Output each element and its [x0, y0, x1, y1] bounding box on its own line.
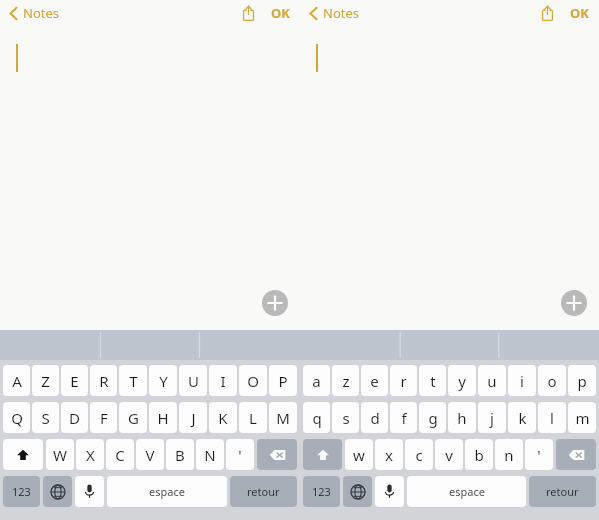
button[interactable]: Z [32, 365, 59, 396]
button[interactable]: W [46, 439, 74, 470]
staticText: Y [159, 371, 168, 391]
staticText: espace [449, 484, 485, 499]
button[interactable]: z [332, 365, 359, 396]
button[interactable]: S [32, 402, 59, 433]
button[interactable]: G [119, 402, 147, 433]
staticText: espace [149, 484, 185, 499]
staticText: v [445, 445, 453, 465]
staticText: y [458, 371, 466, 391]
button[interactable]: V [136, 439, 164, 470]
staticText: C [115, 445, 125, 465]
button[interactable]: Dictate [375, 476, 404, 507]
button[interactable]: Y [149, 365, 177, 396]
button[interactable]: M [269, 402, 297, 433]
button[interactable]: h [448, 402, 476, 433]
button[interactable]: C [106, 439, 134, 470]
staticText: retour [546, 484, 579, 499]
staticText: B [175, 445, 185, 465]
button[interactable]: Dictate [75, 476, 104, 507]
button[interactable]: Add [561, 290, 587, 316]
button[interactable]: Backspace [257, 439, 297, 470]
button[interactable]: F [90, 402, 117, 433]
staticText: H [157, 408, 169, 428]
button[interactable]: espace [107, 476, 227, 507]
button[interactable]: U [179, 365, 207, 396]
button[interactable]: N [196, 439, 224, 470]
button[interactable]: t [419, 365, 446, 396]
staticText: E [70, 371, 79, 391]
button[interactable]: espace [407, 476, 526, 507]
button[interactable]: j [478, 402, 506, 433]
staticText: G [128, 408, 139, 428]
button[interactable]: O [239, 365, 267, 396]
button[interactable]: retour [230, 476, 297, 507]
button[interactable]: Share [536, 2, 558, 24]
button[interactable]: Q [3, 402, 30, 433]
staticText: n [504, 445, 514, 465]
button[interactable]: d [361, 402, 388, 433]
button[interactable]: m [568, 402, 596, 433]
button[interactable]: x [375, 439, 403, 470]
button[interactable]: r [390, 365, 417, 396]
button[interactable]: Change keyboard [343, 476, 372, 507]
staticText: 123 [312, 484, 331, 499]
button[interactable]: f [390, 402, 417, 433]
button[interactable]: 123 [303, 476, 340, 507]
button[interactable]: B [166, 439, 194, 470]
button[interactable]: ' [525, 439, 553, 470]
button[interactable]: L [239, 402, 267, 433]
button[interactable]: k [508, 402, 536, 433]
button[interactable]: J [179, 402, 207, 433]
button[interactable]: ' [226, 439, 254, 470]
staticText: T [129, 371, 138, 391]
button[interactable]: c [405, 439, 433, 470]
button[interactable]: a [303, 365, 330, 396]
button[interactable]: w [345, 439, 373, 470]
button[interactable]: D [61, 402, 88, 433]
button[interactable]: s [332, 402, 359, 433]
staticText: k [518, 408, 527, 428]
button[interactable]: E [61, 365, 88, 396]
staticText: N [204, 445, 216, 465]
button[interactable]: o [538, 365, 566, 396]
staticText: OK [271, 4, 290, 22]
button[interactable]: i [508, 365, 536, 396]
staticText: F [100, 408, 108, 428]
button[interactable]: Shift [303, 439, 342, 470]
button[interactable]: OK [269, 4, 292, 22]
button[interactable]: retour [529, 476, 596, 507]
staticText: ' [537, 445, 541, 465]
button[interactable]: H [149, 402, 177, 433]
button[interactable]: n [495, 439, 523, 470]
staticText: P [278, 371, 288, 391]
button[interactable]: Notes [308, 4, 359, 22]
button[interactable]: Notes [8, 4, 59, 22]
button[interactable]: Add [262, 290, 288, 316]
button[interactable]: y [448, 365, 476, 396]
button[interactable]: q [303, 402, 330, 433]
button[interactable]: v [435, 439, 463, 470]
button[interactable]: b [465, 439, 493, 470]
button[interactable]: I [209, 365, 237, 396]
staticText: L [249, 408, 257, 428]
button[interactable]: p [568, 365, 596, 396]
staticText: Notes [323, 4, 359, 22]
button[interactable]: 123 [3, 476, 40, 507]
button[interactable]: l [538, 402, 566, 433]
button[interactable]: K [209, 402, 237, 433]
staticText: a [312, 371, 321, 391]
button[interactable]: X [76, 439, 104, 470]
button[interactable]: e [361, 365, 388, 396]
button[interactable]: Share [237, 2, 259, 24]
button[interactable]: g [419, 402, 446, 433]
button[interactable]: Shift [3, 439, 43, 470]
button[interactable]: T [119, 365, 147, 396]
button[interactable]: P [269, 365, 297, 396]
button[interactable]: A [3, 365, 30, 396]
button[interactable]: Backspace [556, 439, 596, 470]
button[interactable]: u [478, 365, 506, 396]
button[interactable]: OK [568, 4, 591, 22]
button[interactable]: Change keyboard [43, 476, 72, 507]
button[interactable]: R [90, 365, 117, 396]
staticText: I [220, 371, 226, 391]
